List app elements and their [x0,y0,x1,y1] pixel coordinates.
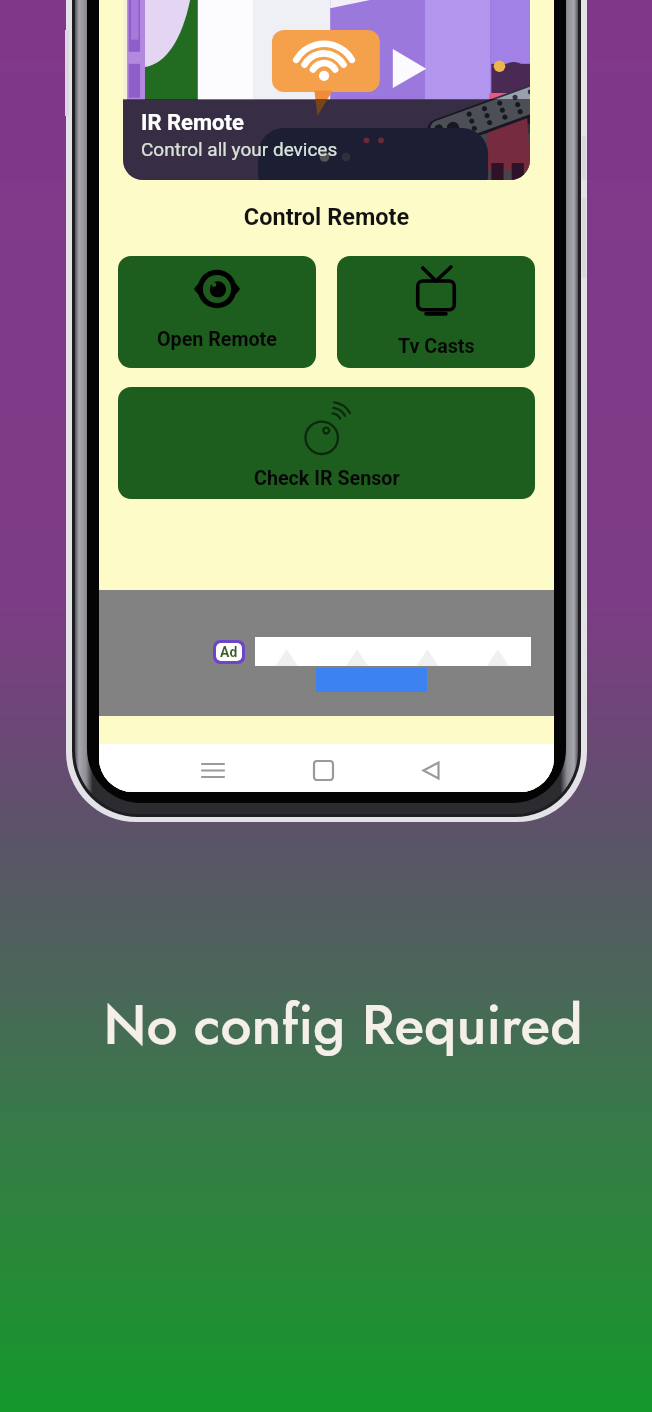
staticText: Ad [220,644,238,660]
staticText: Control all your devices [141,138,338,160]
staticText: Control Remote [99,203,554,231]
staticText: IR Remote [141,110,244,136]
button[interactable]: Home [299,746,347,792]
button[interactable]: Open Remote [118,256,316,368]
button[interactable]: Tv Casts [337,256,535,368]
staticText: Open Remote [157,328,277,351]
button[interactable]: Recents [189,746,237,792]
staticText: No config Required [17,985,652,1064]
staticText: Tv Casts [398,335,475,358]
button[interactable]: Back [407,746,455,792]
button[interactable]: IR Remote [123,0,530,180]
button[interactable]: Check IR Sensor [118,387,535,499]
staticText: Check IR Sensor [254,467,400,490]
